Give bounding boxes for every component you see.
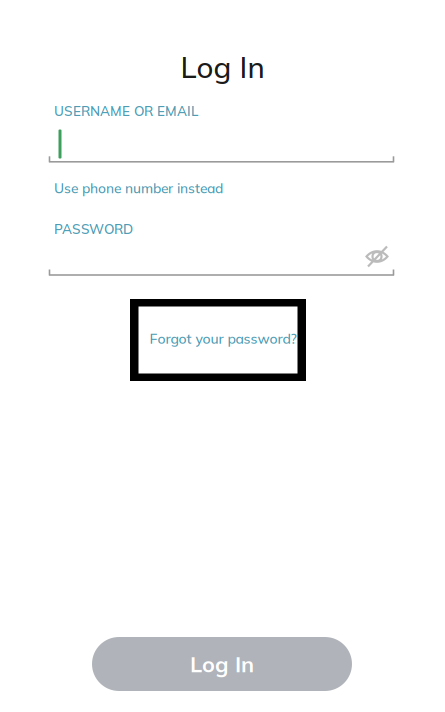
staticText: Log In [190, 650, 254, 678]
staticText: Forgot your password? [149, 330, 296, 347]
button[interactable]: Show password [355, 238, 399, 274]
button[interactable]: Forgot your password? [130, 299, 306, 381]
staticText: Log In [180, 49, 264, 85]
staticText: USERNAME OR EMAIL [54, 103, 198, 119]
button[interactable]: Log In [92, 637, 352, 691]
staticText: PASSWORD [54, 221, 133, 237]
button[interactable]: Use phone number instead [54, 176, 374, 200]
staticText: Use phone number instead [54, 179, 223, 197]
